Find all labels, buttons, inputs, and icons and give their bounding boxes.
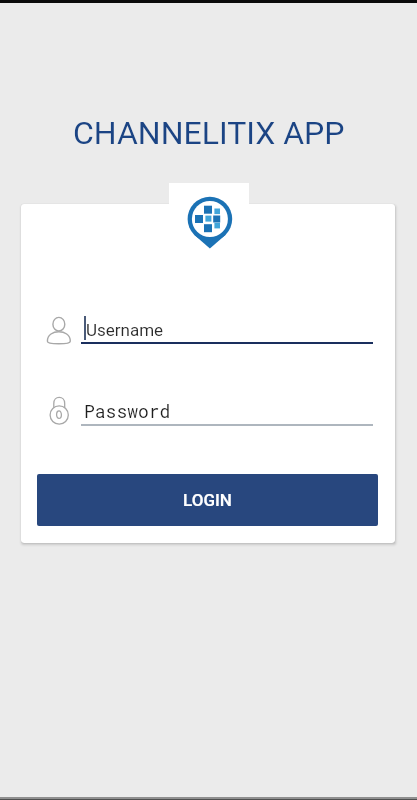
staticText: Password (84, 399, 171, 423)
button[interactable]: Username (40, 308, 380, 348)
button[interactable]: Password (40, 388, 380, 430)
staticText: Username (86, 320, 164, 340)
staticText: CHANNELITIX APP (73, 114, 345, 152)
button[interactable]: LOGIN (37, 474, 378, 526)
staticText: LOGIN (183, 490, 232, 510)
